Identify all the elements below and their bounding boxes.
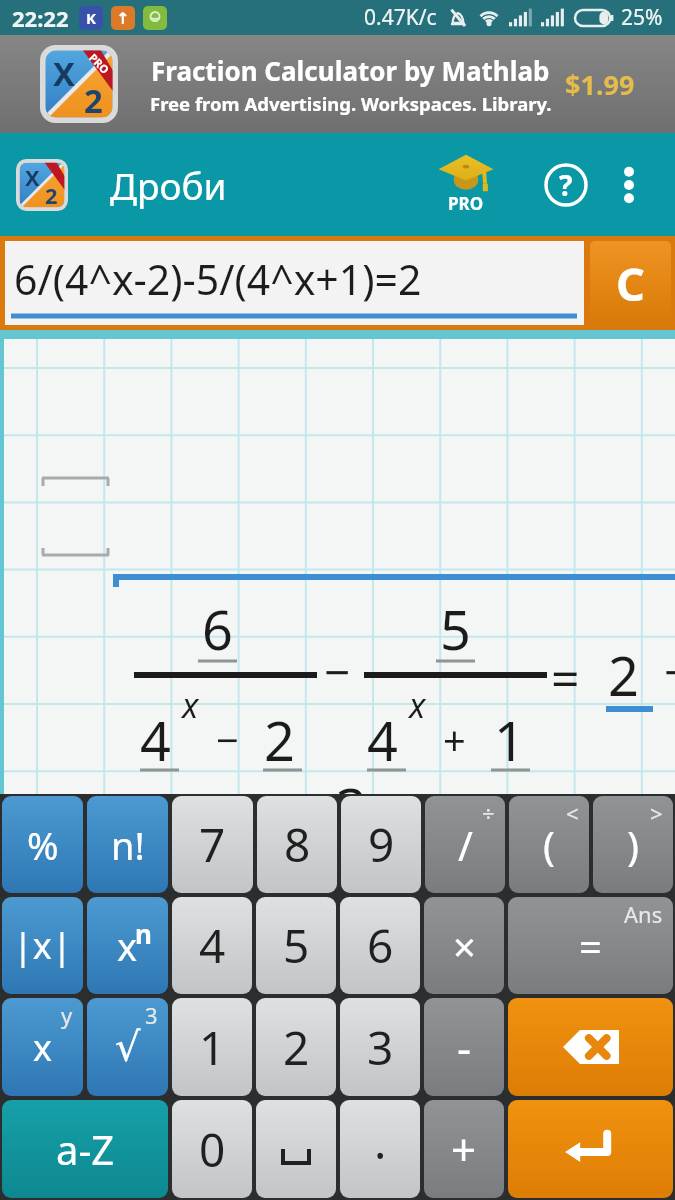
staticText: × xyxy=(453,919,476,973)
staticText: Дроби xyxy=(110,160,227,210)
button[interactable]: ? xyxy=(544,163,588,207)
staticText: 25% xyxy=(621,3,663,32)
button[interactable]: a-Z xyxy=(2,1100,168,1198)
button[interactable]: - xyxy=(424,998,504,1096)
staticText: ( xyxy=(543,818,555,872)
staticText: $1.99 xyxy=(565,66,635,103)
staticText: ↑ xyxy=(116,9,130,28)
button[interactable] xyxy=(508,998,673,1096)
staticText: 7 xyxy=(199,813,226,876)
staticText: 4 xyxy=(199,914,226,977)
staticText: − xyxy=(216,712,239,766)
button[interactable]: / xyxy=(425,796,505,893)
staticText: Fraction Calculator by Mathlab xyxy=(151,53,550,88)
staticText: Ans xyxy=(624,899,663,929)
button[interactable]: x xyxy=(2,998,83,1096)
staticText: < xyxy=(566,798,579,828)
button[interactable]: × xyxy=(424,897,504,994)
staticText: 2 xyxy=(264,703,295,777)
button[interactable]: X xyxy=(16,159,68,211)
staticText: 6 xyxy=(367,914,394,977)
button[interactable]: 3 xyxy=(340,998,420,1096)
button[interactable]: n! xyxy=(87,796,168,893)
button[interactable]: % xyxy=(2,796,83,893)
button[interactable]: . xyxy=(340,1100,420,1198)
staticText: % xyxy=(27,819,59,871)
button[interactable]: C xyxy=(590,241,671,325)
button[interactable]: ( xyxy=(509,796,589,893)
staticText: ÷ xyxy=(482,798,495,828)
staticText: K xyxy=(86,8,96,28)
staticText: 3 xyxy=(145,1000,158,1030)
staticText: . xyxy=(374,1110,387,1173)
staticText: 0 xyxy=(199,1118,226,1181)
staticText: y xyxy=(61,1000,73,1030)
staticText: 4 xyxy=(367,703,398,777)
staticText: − xyxy=(324,640,351,703)
button[interactable]: 5 xyxy=(256,897,336,994)
button[interactable]: 9 xyxy=(341,796,421,893)
staticText: − xyxy=(664,640,675,703)
staticText: x xyxy=(409,682,426,728)
button[interactable]: 1 xyxy=(172,998,252,1096)
staticText: 5 xyxy=(440,592,471,666)
button[interactable]: x xyxy=(87,897,168,994)
staticText: x xyxy=(182,682,199,728)
button[interactable]: PRO xyxy=(438,154,494,215)
staticText: + xyxy=(451,1119,477,1179)
staticText: PRO xyxy=(448,192,484,215)
button[interactable] xyxy=(508,1100,673,1198)
staticText: 4 xyxy=(140,703,171,777)
button[interactable] xyxy=(256,1100,336,1198)
staticText: = xyxy=(551,644,580,712)
button[interactable]: √ xyxy=(87,998,168,1096)
staticText: Free from Advertising. Workspaces. Libra… xyxy=(150,91,552,116)
staticText: = xyxy=(579,919,602,973)
button[interactable]: 7 xyxy=(172,796,253,893)
staticText: 6 xyxy=(202,592,233,666)
staticText: 2 xyxy=(84,78,103,123)
button[interactable]: = xyxy=(508,897,673,994)
button[interactable] xyxy=(622,163,636,207)
staticText: > xyxy=(650,798,663,828)
staticText: 2 xyxy=(45,181,58,211)
staticText: C xyxy=(616,253,645,314)
staticText: 5 xyxy=(283,914,310,977)
button[interactable]: |x| xyxy=(2,897,83,994)
button[interactable]: 2 xyxy=(256,998,336,1096)
staticText: √ xyxy=(115,1024,141,1071)
staticText: ? xyxy=(559,166,573,204)
button[interactable]: 6 xyxy=(340,897,420,994)
staticText: |x| xyxy=(13,921,72,970)
staticText: 0.47K/c xyxy=(364,3,437,32)
staticText: a-Z xyxy=(56,1122,115,1176)
button[interactable]: 8 xyxy=(257,796,337,893)
staticText: ) xyxy=(627,818,639,872)
staticText: n! xyxy=(111,819,145,871)
staticText: n xyxy=(135,916,152,951)
staticText: 1 xyxy=(494,703,525,777)
staticText: 6/(4^x-2)-5/(4^x+1)=2 xyxy=(14,251,422,307)
staticText: 1 xyxy=(199,1016,226,1079)
staticText: x xyxy=(33,1023,53,1072)
button[interactable]: 4 xyxy=(172,897,252,994)
staticText: 2 xyxy=(608,638,639,712)
staticText: - xyxy=(457,1017,472,1077)
staticText: PRO xyxy=(86,50,113,77)
staticText: + xyxy=(443,712,466,766)
staticText: 3 xyxy=(336,770,367,844)
button[interactable]: X xyxy=(0,35,675,133)
staticText: / xyxy=(458,818,473,872)
staticText: 2 xyxy=(283,1016,310,1079)
staticText: 22:22 xyxy=(12,3,69,33)
button[interactable]: ) xyxy=(593,796,673,893)
staticText: x xyxy=(117,920,138,972)
staticText: 9 xyxy=(368,813,395,876)
staticText: 8 xyxy=(284,813,311,876)
button[interactable]: + xyxy=(424,1100,504,1198)
staticText: 3 xyxy=(367,1016,394,1079)
button[interactable]: 0 xyxy=(172,1100,252,1198)
staticText: X xyxy=(53,51,75,96)
staticText: X xyxy=(25,163,40,193)
